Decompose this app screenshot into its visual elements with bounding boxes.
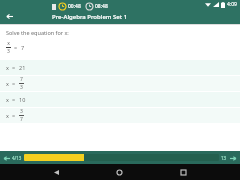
button[interactable]: Recents <box>176 165 190 179</box>
staticText: 3 <box>20 108 23 115</box>
staticText: x <box>6 112 9 119</box>
staticText: 7 <box>21 44 25 51</box>
staticText: = <box>12 96 16 103</box>
staticText: x <box>6 96 9 103</box>
staticText: 08:48 <box>95 3 108 10</box>
staticText: 4:09 <box>227 1 237 8</box>
staticText: x <box>7 40 10 47</box>
button[interactable]: Back <box>2 9 16 23</box>
staticText: 13 <box>221 155 227 161</box>
button[interactable]: x <box>0 92 240 107</box>
staticText: Pre-Algebra Problem Set 1 <box>52 13 128 21</box>
button[interactable]: Previous <box>3 154 11 162</box>
staticText: 7 <box>20 76 23 83</box>
staticText: = <box>12 64 16 71</box>
staticText: 10 <box>19 96 26 103</box>
staticText: Solve the equation for x: <box>6 29 69 36</box>
button[interactable]: x <box>0 76 240 91</box>
button[interactable]: Back <box>49 165 63 179</box>
staticText: 00:48 <box>68 3 81 10</box>
button[interactable]: 08:48 <box>86 3 108 10</box>
button[interactable]: x <box>0 60 240 75</box>
staticText: 7 <box>20 116 23 123</box>
staticText: 3 <box>20 84 23 91</box>
staticText: = <box>14 44 18 51</box>
staticText: 4/13 <box>12 155 22 161</box>
staticText: 21 <box>19 64 26 71</box>
staticText: x <box>6 64 9 71</box>
button[interactable]: Next <box>229 154 237 162</box>
button[interactable]: x <box>0 108 240 123</box>
staticText: 3 <box>7 48 10 55</box>
button[interactable]: Home <box>112 165 126 179</box>
button[interactable]: 00:48 <box>59 3 81 10</box>
staticText: = <box>12 112 16 119</box>
staticText: = <box>12 80 16 87</box>
staticText: x <box>6 80 9 87</box>
